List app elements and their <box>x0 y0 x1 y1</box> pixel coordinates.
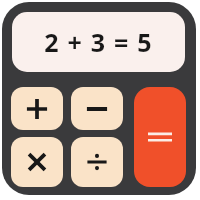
button[interactable]: Minus <box>71 87 123 130</box>
button[interactable]: Multiply <box>11 137 63 187</box>
button[interactable]: 2 + 3 = 5 <box>12 12 185 72</box>
button[interactable]: Plus <box>11 87 63 130</box>
button[interactable]: Equals <box>134 87 186 187</box>
button[interactable]: Divide <box>71 137 123 187</box>
staticText: 2 + 3 = 5 <box>44 25 153 59</box>
